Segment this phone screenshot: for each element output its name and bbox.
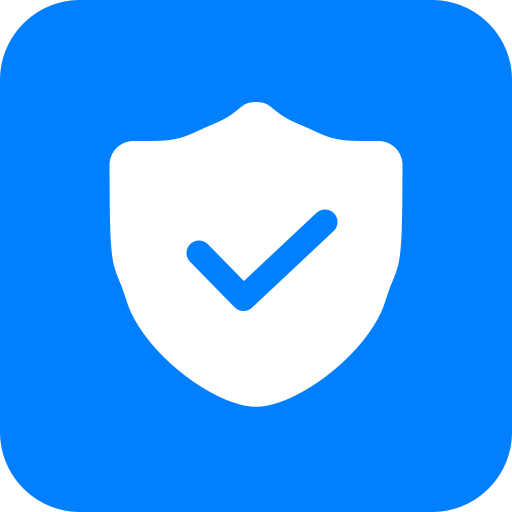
button[interactable]: Protected — [0, 0, 512, 512]
